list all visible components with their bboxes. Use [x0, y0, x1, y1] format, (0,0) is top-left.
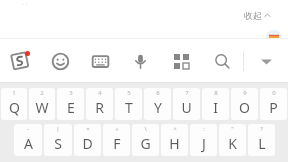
- staticText: P: [269, 98, 278, 117]
- staticText: R: [95, 98, 104, 117]
- staticText: W: [35, 98, 49, 117]
- staticText: K: [228, 134, 237, 153]
- staticText: Y: [154, 98, 162, 117]
- staticText: A: [24, 134, 33, 153]
- staticText: 3: [69, 89, 73, 97]
- staticText: 8: [214, 89, 218, 97]
- button[interactable]: ^: [161, 124, 188, 156]
- staticText: 2: [40, 89, 44, 97]
- staticText: ": [231, 125, 234, 133]
- staticText: Q: [9, 98, 20, 117]
- button[interactable]: ": [219, 124, 246, 156]
- button[interactable]: 8: [202, 88, 229, 120]
- staticText: ÷: [115, 125, 119, 133]
- button[interactable]: ?: [248, 124, 275, 156]
- button[interactable]: :: [190, 124, 217, 156]
- staticText: S: [54, 134, 62, 153]
- button[interactable]: ×: [74, 124, 101, 156]
- staticText: 5: [127, 89, 131, 97]
- staticText: O: [239, 98, 250, 117]
- staticText: 0: [272, 89, 276, 97]
- button[interactable]: 4: [86, 88, 113, 120]
- staticText: · ·: [22, 0, 28, 10]
- button[interactable]: Account avatar: [266, 30, 282, 46]
- button[interactable]: Collapse toolbar: [244, 39, 288, 83]
- staticText: J: [202, 134, 206, 153]
- staticText: :: [203, 125, 205, 133]
- staticText: 4: [98, 89, 102, 97]
- button[interactable]: 9: [231, 88, 258, 120]
- button[interactable]: 7: [173, 88, 200, 120]
- staticText: ×: [86, 125, 90, 133]
- button[interactable]: \: [132, 124, 159, 156]
- staticText: 9: [243, 89, 247, 97]
- button[interactable]: 2: [29, 88, 55, 120]
- button[interactable]: 收起: [241, 8, 274, 23]
- staticText: 6: [156, 89, 160, 97]
- staticText: E: [67, 98, 75, 117]
- staticText: L: [258, 134, 266, 153]
- staticText: ?: [260, 125, 263, 133]
- staticText: -: [27, 125, 29, 133]
- button[interactable]: -: [14, 124, 42, 156]
- staticText: H: [169, 134, 180, 153]
- button[interactable]: Search: [202, 39, 243, 83]
- staticText: \: [144, 125, 147, 133]
- button[interactable]: 5: [115, 88, 142, 120]
- button[interactable]: More tools: [161, 39, 202, 83]
- staticText: 7: [185, 89, 189, 97]
- button[interactable]: Voice input: [120, 39, 161, 83]
- staticText: 1: [12, 89, 16, 97]
- staticText: T: [125, 98, 133, 117]
- button[interactable]: 6: [144, 88, 171, 120]
- button[interactable]: Keyboard layout: [80, 39, 120, 83]
- button[interactable]: 1: [1, 88, 27, 120]
- button[interactable]: 3: [57, 88, 84, 120]
- staticText: |: [56, 125, 60, 133]
- staticText: U: [181, 98, 192, 117]
- staticText: ^: [173, 125, 177, 133]
- button[interactable]: Emoji: [40, 39, 80, 83]
- staticText: I: [213, 98, 218, 117]
- button[interactable]: 0: [260, 88, 287, 120]
- button[interactable]: |: [44, 124, 72, 156]
- staticText: G: [140, 134, 151, 153]
- staticText: D: [82, 134, 93, 153]
- button[interactable]: ÷: [103, 124, 130, 156]
- staticText: 收起: [244, 10, 262, 21]
- staticText: F: [113, 134, 121, 153]
- button[interactable]: Sogou input method: [0, 39, 40, 83]
